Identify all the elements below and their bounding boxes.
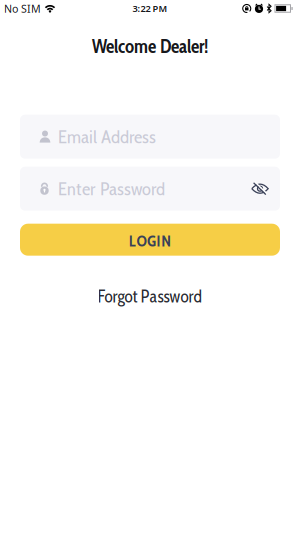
button[interactable]: Enter Password — [20, 167, 280, 211]
button[interactable]: Forgot Password — [97, 286, 202, 307]
button[interactable]: LOGIN — [20, 224, 280, 256]
staticText: Welcome Dealer! — [92, 35, 208, 58]
staticText: Email Address — [58, 125, 156, 148]
button[interactable]: Show Password — [251, 182, 269, 195]
staticText: Forgot Password — [97, 286, 202, 307]
staticText: LOGIN — [129, 231, 171, 250]
staticText: No SIM — [4, 1, 41, 16]
staticText: 3:22 PM — [132, 2, 167, 15]
button[interactable]: Email Address — [20, 115, 280, 159]
staticText: Enter Password — [58, 177, 165, 200]
